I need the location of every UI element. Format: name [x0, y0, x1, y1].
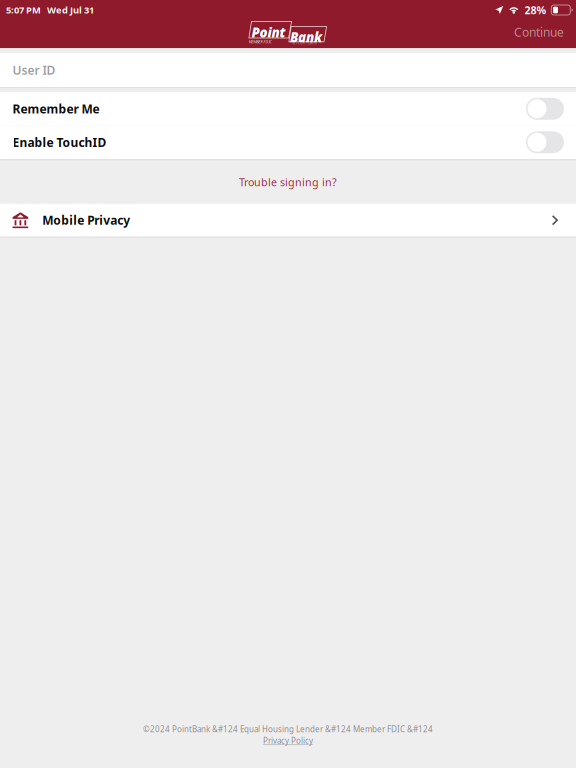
staticText: MEMBER FDIC	[248, 39, 271, 44]
staticText: Privacy Policy	[263, 735, 313, 746]
staticText: User ID	[13, 62, 56, 78]
button[interactable]: Remember Me	[0, 92, 576, 125]
staticText: Wed Jul 31	[47, 4, 94, 16]
staticText: Enable TouchID	[13, 134, 107, 150]
staticText: Continue	[514, 24, 564, 40]
button[interactable]: Continue	[514, 20, 576, 48]
staticText: Point	[251, 23, 285, 41]
button[interactable]: Mobile Privacy	[0, 204, 576, 237]
staticText: ©2024 PointBank &#124 Equal Housing Lend…	[143, 724, 433, 734]
staticText: Bank	[290, 28, 322, 46]
staticText: 5:07 PM	[6, 4, 41, 16]
staticText: Trouble signing in?	[239, 175, 337, 189]
staticText: 28%	[525, 3, 547, 17]
button[interactable]: Enable TouchID	[0, 125, 576, 159]
staticText: Mobile Privacy	[42, 212, 130, 228]
staticText	[41, 4, 47, 16]
staticText: Remember Me	[13, 101, 100, 117]
button[interactable]: Trouble signing in?	[0, 161, 576, 204]
button[interactable]: User ID	[0, 53, 576, 87]
staticText: A POINT BANK	[293, 40, 317, 46]
button[interactable]: Privacy Policy	[263, 735, 313, 746]
